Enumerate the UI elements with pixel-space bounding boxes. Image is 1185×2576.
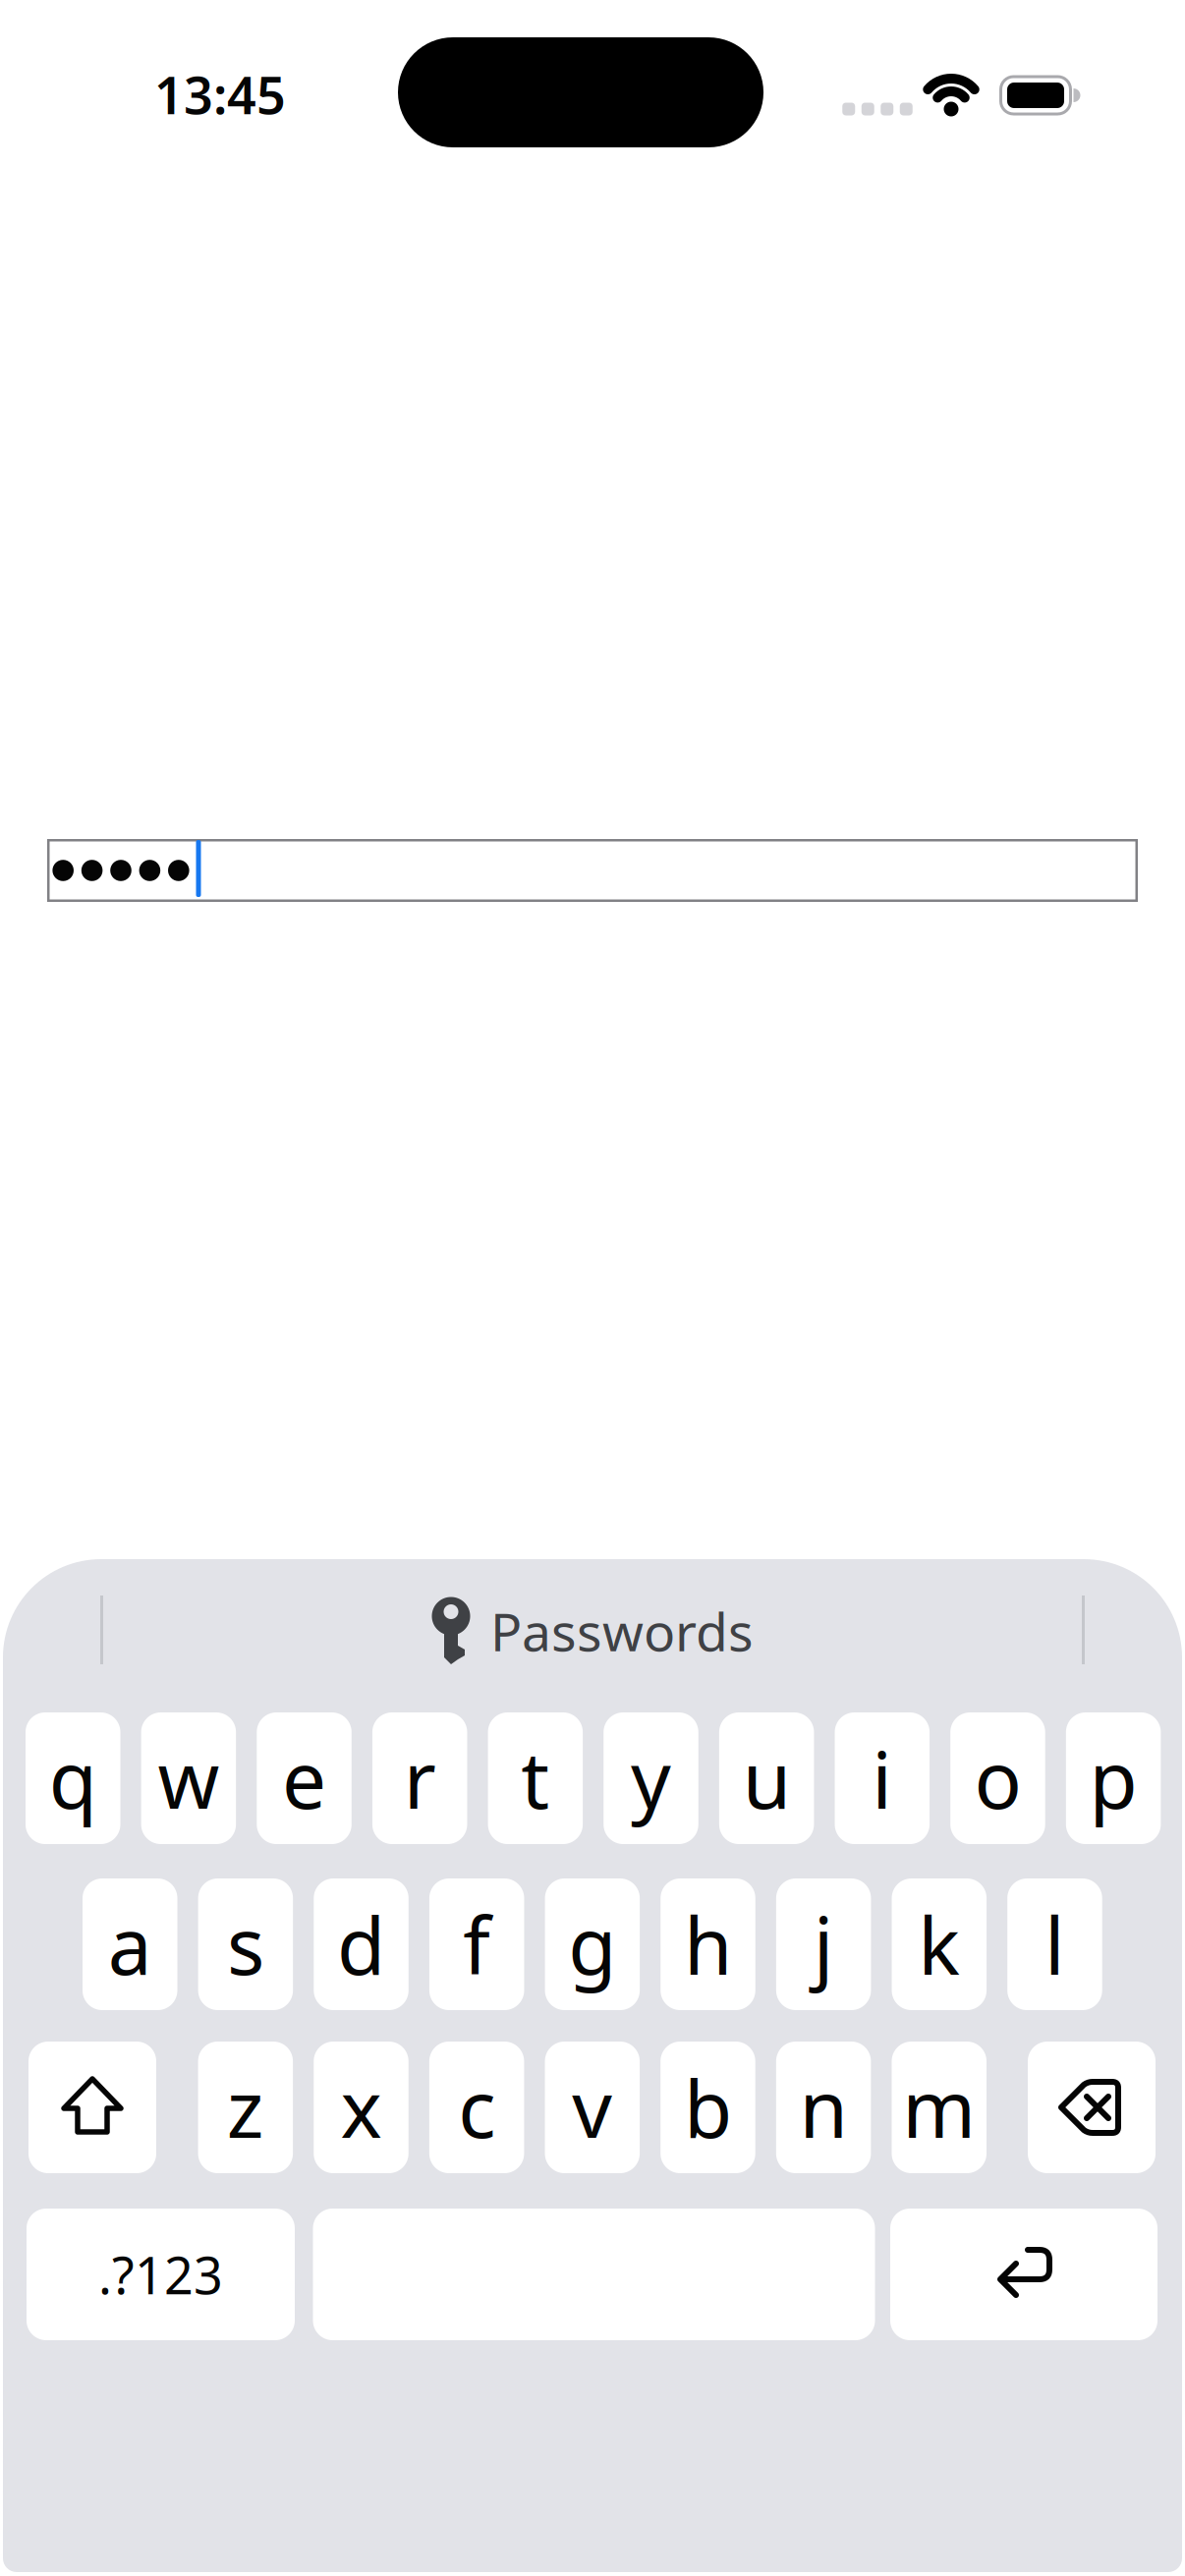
staticText: s (227, 1892, 264, 1996)
staticText: r (404, 1726, 436, 1830)
staticText: i (872, 1726, 892, 1830)
staticText: 13:45 (154, 60, 286, 128)
button[interactable]: p (1066, 1712, 1161, 1844)
button[interactable]: d (314, 1878, 409, 2010)
button[interactable]: l (1007, 1878, 1102, 2010)
button[interactable]: b (660, 2042, 755, 2173)
button[interactable]: Passwords (431, 1596, 754, 1666)
staticText: d (337, 1892, 385, 1996)
button[interactable]: t (488, 1712, 583, 1844)
staticText: w (158, 1726, 220, 1830)
button[interactable] (1028, 2042, 1156, 2173)
button[interactable]: i (835, 1712, 930, 1844)
button[interactable]: m (892, 2042, 987, 2173)
button[interactable]: a (83, 1878, 177, 2010)
button[interactable]: w (141, 1712, 236, 1844)
staticText: l (1044, 1892, 1065, 1996)
staticText: k (918, 1892, 960, 1996)
button[interactable] (890, 2209, 1157, 2340)
staticText: p (1089, 1726, 1137, 1830)
button[interactable]: o (950, 1712, 1045, 1844)
staticText: b (684, 2055, 732, 2160)
staticText: o (974, 1726, 1021, 1830)
staticText: n (799, 2055, 848, 2160)
staticText: y (631, 1726, 671, 1830)
staticText: m (902, 2055, 976, 2160)
button[interactable] (28, 2042, 156, 2173)
button[interactable]: r (372, 1712, 467, 1844)
button[interactable]: x (314, 2042, 408, 2173)
button[interactable]: h (660, 1878, 755, 2010)
button[interactable]: y (604, 1712, 698, 1844)
staticText: c (458, 2055, 495, 2160)
staticText: t (521, 1726, 550, 1830)
button[interactable]: k (892, 1878, 987, 2010)
button[interactable]: f (429, 1878, 524, 2010)
staticText: z (227, 2055, 264, 2160)
staticText: a (108, 1892, 152, 1996)
button[interactable]: g (545, 1878, 640, 2010)
staticText: g (568, 1892, 616, 1996)
staticText: f (463, 1892, 491, 1996)
button[interactable] (47, 839, 1138, 902)
button[interactable]: e (257, 1712, 352, 1844)
button[interactable]: v (545, 2042, 640, 2173)
button[interactable]: q (26, 1712, 120, 1844)
staticText: v (572, 2055, 612, 2160)
button[interactable]: s (198, 1878, 293, 2010)
staticText: Passwords (490, 1596, 754, 1666)
staticText: e (282, 1726, 326, 1830)
button[interactable]: n (776, 2042, 871, 2173)
staticText: u (743, 1726, 791, 1830)
staticText: .?123 (98, 2240, 223, 2308)
button[interactable]: u (719, 1712, 814, 1844)
button[interactable]: z (198, 2042, 293, 2173)
staticText: h (684, 1892, 732, 1996)
button[interactable]: c (429, 2042, 524, 2173)
button[interactable]: .?123 (27, 2209, 295, 2340)
staticText: x (340, 2055, 382, 2160)
staticText: j (813, 1892, 834, 1996)
button[interactable]: j (776, 1878, 871, 2010)
staticText: q (49, 1726, 97, 1830)
